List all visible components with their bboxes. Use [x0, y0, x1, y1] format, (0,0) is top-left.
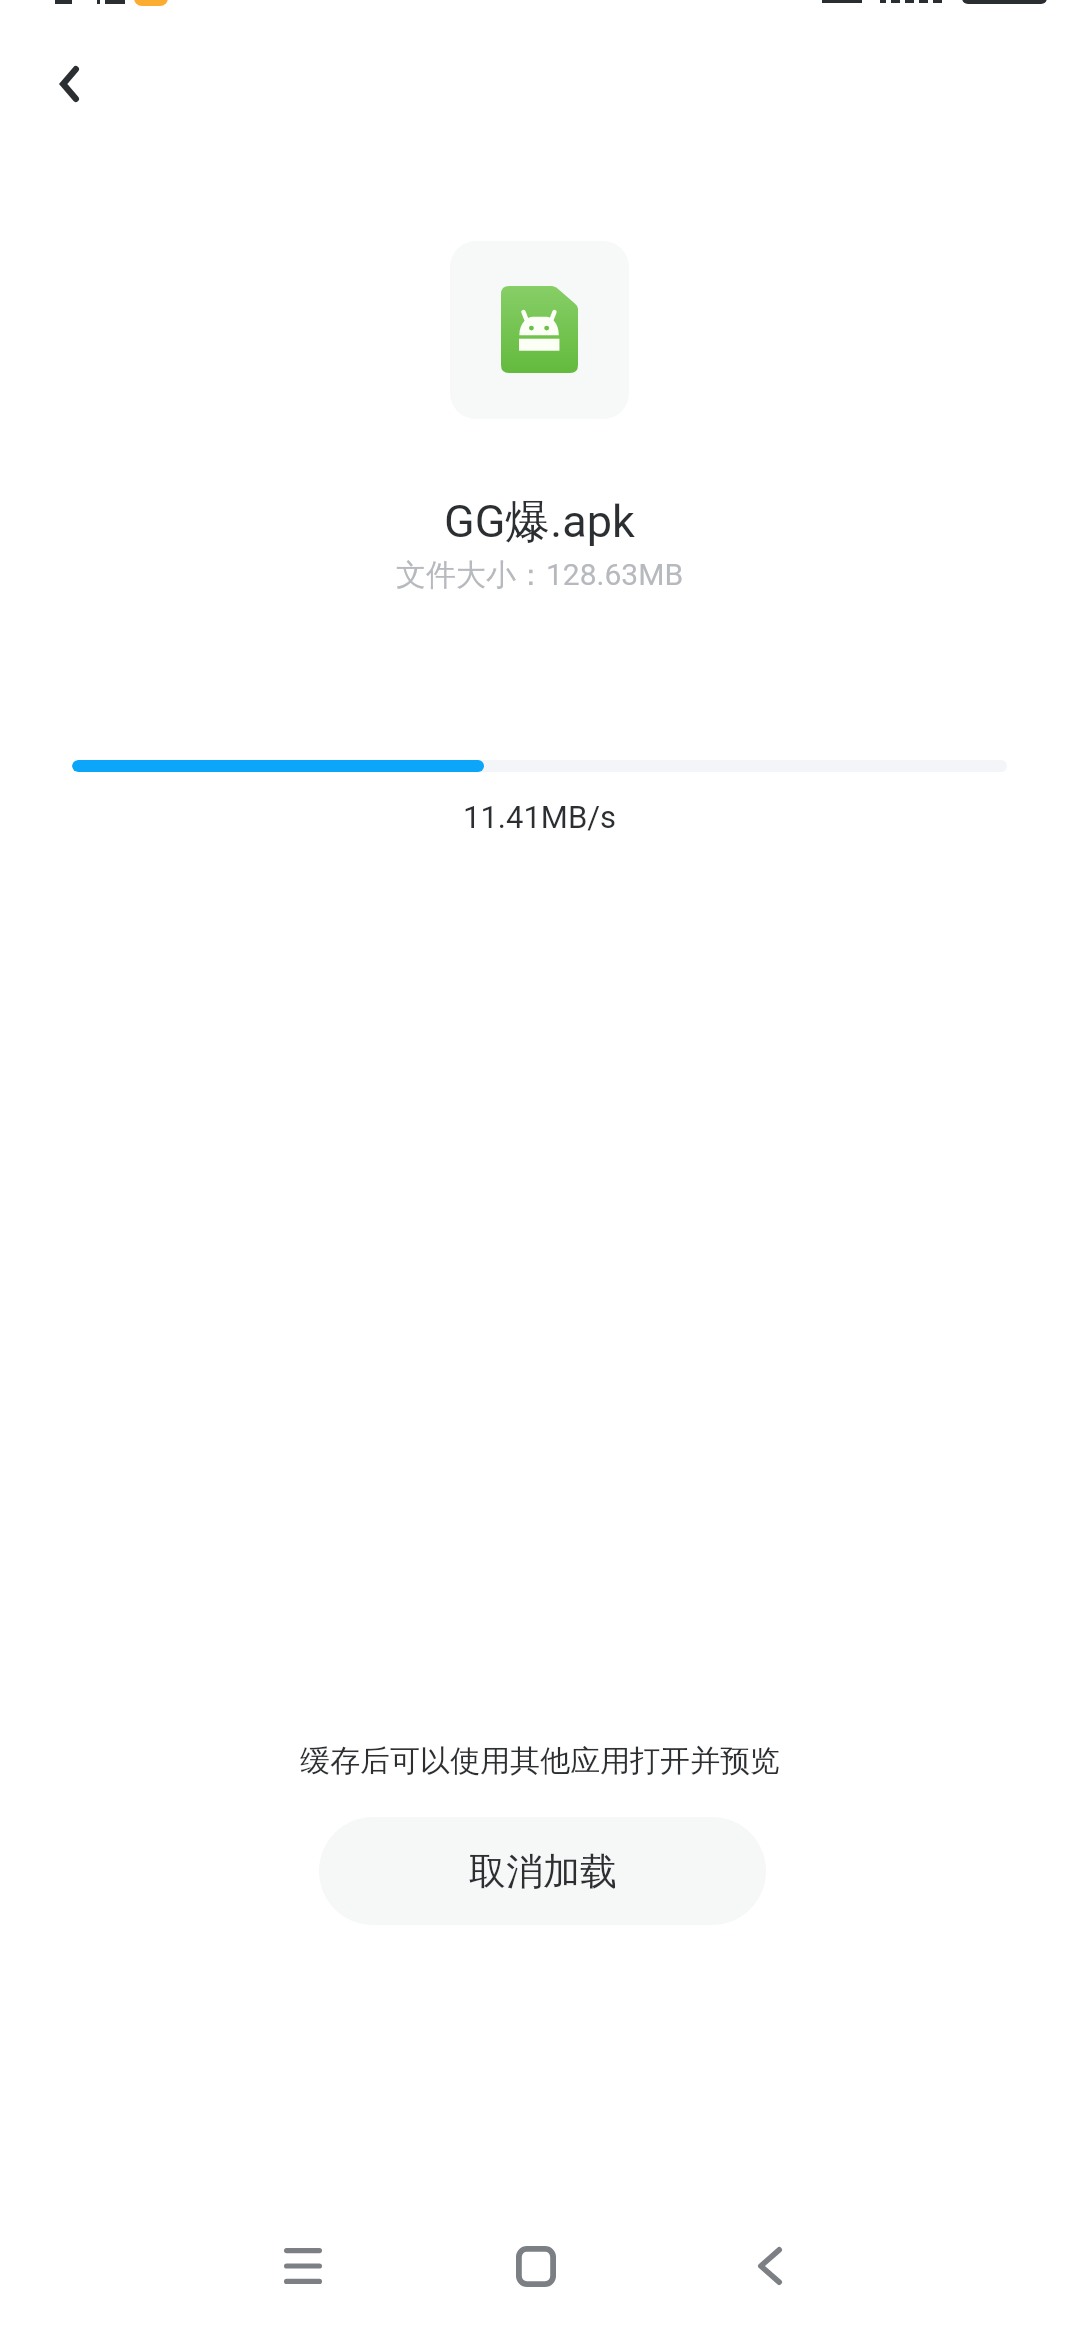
- staticText: 缓存后可以使用其他应用打开并预览: [300, 1742, 780, 1780]
- button[interactable]: 取消加载: [319, 1817, 766, 1925]
- button[interactable]: Back: [27, 37, 111, 131]
- staticText: GG爆.apk: [444, 494, 635, 551]
- staticText: 11.41MB/s: [463, 799, 617, 835]
- staticText: 取消加载: [469, 1848, 617, 1895]
- button[interactable]: Recent apps: [233, 2196, 373, 2331]
- button[interactable]: Home: [466, 2196, 606, 2331]
- button[interactable]: Back: [700, 2196, 840, 2331]
- staticText: 文件大小：128.63MB: [396, 556, 684, 594]
